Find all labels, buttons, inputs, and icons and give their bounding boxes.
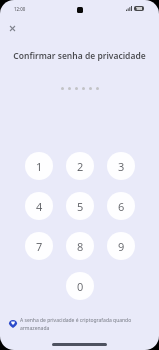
staticText: A senha de privacidade é criptografada q… [20,317,145,331]
staticText: 7 [36,239,43,254]
button[interactable]: 4 [25,192,53,220]
staticText: 9 [118,239,125,254]
staticText: 6 [118,199,125,214]
button[interactable]: Close [2,18,22,38]
staticText: 1 [36,159,43,174]
staticText: 5 [77,199,84,214]
staticText: 2 [77,159,84,174]
staticText: 12:00 [14,6,26,12]
button[interactable]: 2 [66,152,94,180]
staticText: 100 [136,6,143,11]
button[interactable]: 5 [66,192,94,220]
button[interactable]: 6 [107,192,135,220]
button[interactable]: 7 [25,232,53,260]
button[interactable]: 9 [107,232,135,260]
button[interactable]: 3 [107,152,135,180]
staticText: Confirmar senha de privacidade [0,50,159,62]
button[interactable]: 0 [66,272,94,300]
staticText: 3 [118,159,125,174]
staticText: 4 [36,199,43,214]
button[interactable]: 8 [66,232,94,260]
staticText: 8 [77,239,84,254]
staticText: 0 [77,279,84,294]
button[interactable]: 1 [25,152,53,180]
